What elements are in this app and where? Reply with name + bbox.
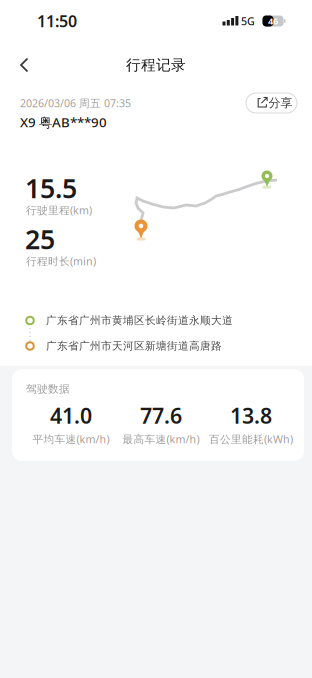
staticText: 25 — [25, 221, 55, 257]
staticText: 15.5 — [25, 170, 77, 206]
staticText: 行驶里程(km) — [26, 203, 92, 217]
staticText: 百公里能耗(kWh) — [209, 432, 293, 446]
staticText: 2026/03/06 周五 07:35 — [20, 96, 131, 110]
staticText: 广东省广州市黄埔区长岭街道永顺大道 — [46, 314, 233, 327]
staticText: 驾驶数据 — [26, 382, 70, 395]
staticText: 平均车速(km/h) — [32, 432, 109, 446]
staticText: 分享 — [268, 96, 292, 110]
staticText: X9 粤AB***90 — [20, 113, 107, 131]
button[interactable]: 分享 — [246, 93, 297, 113]
staticText: 广东省广州市天河区新塘街道高唐路 — [46, 339, 222, 352]
staticText: 46 — [268, 15, 278, 27]
staticText: 77.6 — [140, 401, 182, 430]
staticText: 13.8 — [230, 401, 272, 430]
staticText: 行程记录 — [126, 56, 186, 74]
staticText: 5G — [241, 14, 255, 28]
staticText: 41.0 — [50, 401, 92, 430]
staticText: 11:50 — [37, 10, 77, 32]
staticText: 最高车速(km/h) — [122, 432, 199, 446]
staticText: 行程时长(min) — [26, 254, 96, 268]
button[interactable]: Back — [7, 48, 41, 82]
